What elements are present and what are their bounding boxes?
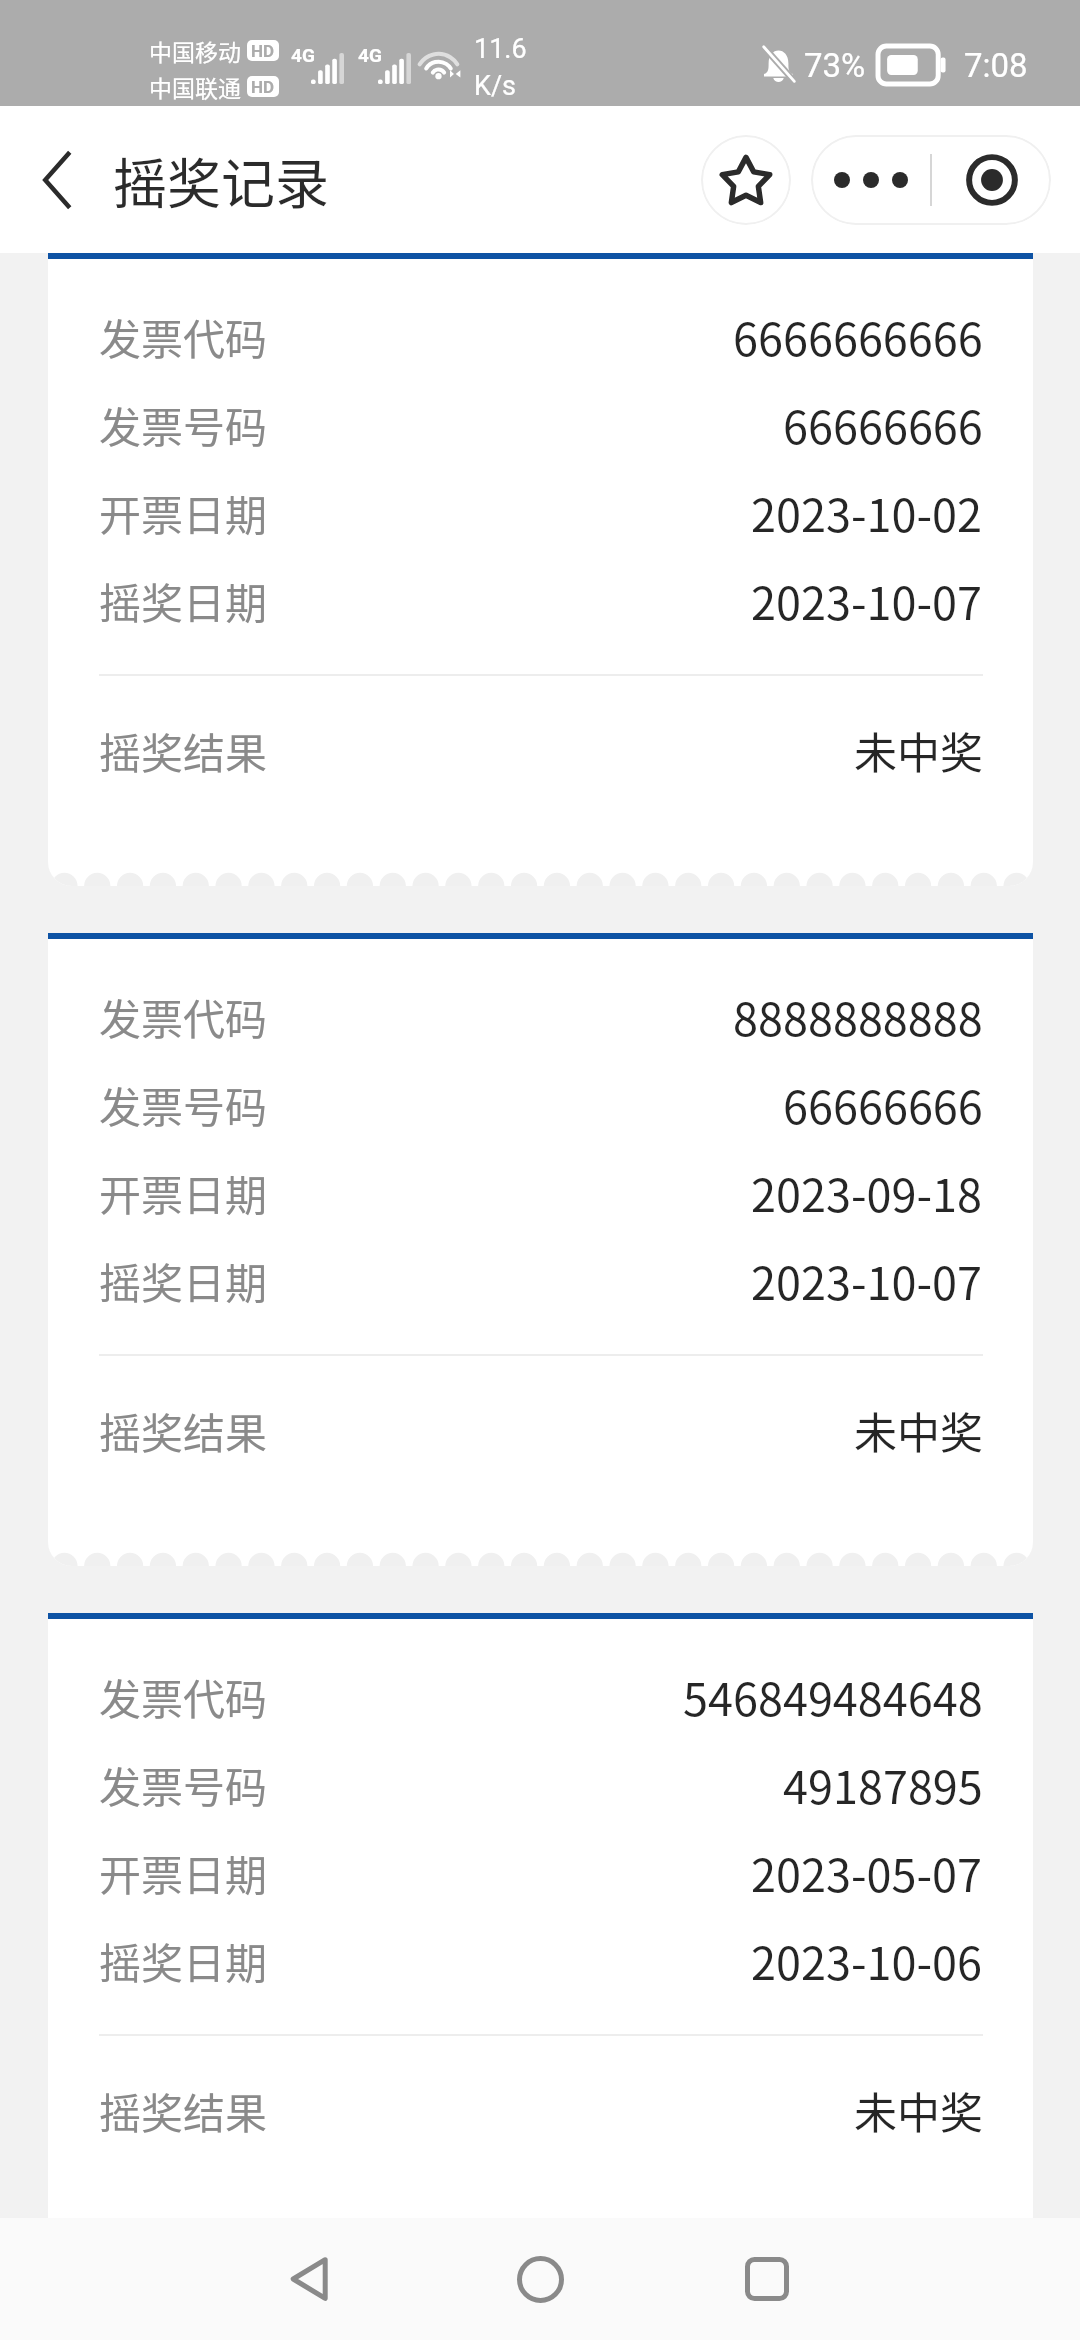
button[interactable]: 发票代码: [48, 1613, 1033, 2218]
button[interactable]: Back: [250, 2219, 370, 2339]
staticText: 49187895: [783, 1752, 983, 1817]
button[interactable]: Close: [932, 135, 1051, 225]
staticText: 未中奖: [854, 2079, 983, 2141]
staticText: 摇奖日期: [99, 1930, 268, 1991]
button[interactable]: Recents: [707, 2219, 827, 2339]
staticText: 546849484648: [683, 1664, 983, 1729]
staticText: 4G: [291, 44, 315, 66]
staticText: 2023-10-07: [751, 1248, 983, 1313]
staticText: 发票号码: [99, 1754, 268, 1815]
staticText: 66666666: [783, 1072, 983, 1137]
button[interactable]: More: [811, 135, 930, 225]
staticText: 发票代码: [99, 306, 268, 367]
staticText: K/s: [474, 70, 517, 102]
staticText: 发票代码: [99, 986, 268, 1047]
staticText: 摇奖结果: [99, 1400, 268, 1461]
staticText: 开票日期: [99, 1162, 268, 1223]
staticText: HD: [251, 41, 275, 61]
staticText: 2023-10-07: [751, 568, 983, 633]
staticText: 2023-10-06: [751, 1928, 983, 1993]
staticText: 未中奖: [854, 719, 983, 781]
button[interactable]: 发票代码: [48, 253, 1033, 886]
staticText: 6666666666: [733, 304, 983, 369]
staticText: 摇奖记录: [113, 141, 329, 219]
staticText: 7:08: [964, 46, 1028, 85]
staticText: 2023-09-18: [751, 1160, 983, 1225]
button[interactable]: Home: [480, 2219, 600, 2339]
staticText: HD: [251, 77, 275, 97]
staticText: 摇奖日期: [99, 570, 268, 631]
staticText: 8888888888: [733, 984, 983, 1049]
button[interactable]: Favorite: [701, 135, 791, 225]
staticText: 66666666: [783, 392, 983, 457]
staticText: 开票日期: [99, 1842, 268, 1903]
staticText: 摇奖结果: [99, 2080, 268, 2141]
staticText: 73%: [804, 46, 866, 85]
staticText: 开票日期: [99, 482, 268, 543]
staticText: 11.6: [474, 33, 527, 65]
staticText: 4G: [358, 44, 382, 66]
staticText: 发票号码: [99, 394, 268, 455]
staticText: 中国移动: [149, 34, 241, 67]
button[interactable]: 发票代码: [48, 933, 1033, 1566]
staticText: 2023-10-02: [751, 480, 983, 545]
staticText: 摇奖日期: [99, 1250, 268, 1311]
button[interactable]: Back: [24, 146, 92, 214]
staticText: 发票号码: [99, 1074, 268, 1135]
staticText: 摇奖结果: [99, 720, 268, 781]
staticText: 发票代码: [99, 1666, 268, 1727]
staticText: 2023-05-07: [751, 1840, 983, 1905]
staticText: 未中奖: [854, 1399, 983, 1461]
staticText: 中国联通: [149, 70, 241, 103]
